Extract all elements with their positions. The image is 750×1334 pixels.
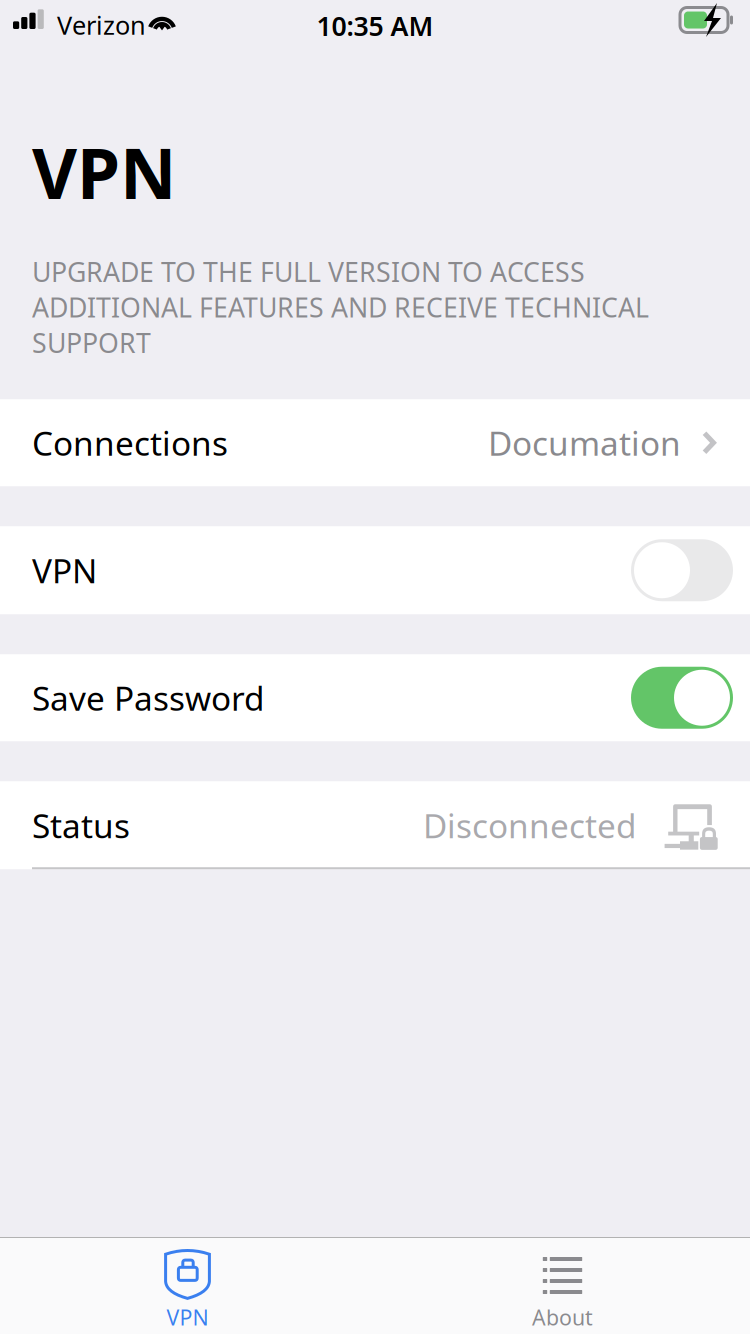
button[interactable]: About (375, 1237, 750, 1334)
button[interactable]: Connections (0, 399, 750, 486)
staticText: Verizon (57, 8, 146, 42)
staticText: VPN (32, 126, 176, 218)
staticText: VPN (32, 548, 97, 592)
staticText: 10:35 AM (316, 8, 433, 43)
staticText: Disconnected (423, 803, 637, 847)
staticText: Connections (32, 421, 228, 465)
button[interactable]: VPN (0, 1237, 375, 1334)
staticText: UPGRADE TO THE FULL VERSION TO ACCESS AD… (32, 254, 649, 360)
staticText: Save Password (32, 676, 265, 720)
button[interactable]: Save Password (0, 654, 750, 741)
button[interactable]: VPN (0, 526, 750, 614)
staticText: About (532, 1303, 593, 1331)
staticText: Status (32, 803, 130, 847)
staticText: Documation (488, 421, 681, 465)
staticText: VPN (166, 1303, 208, 1331)
